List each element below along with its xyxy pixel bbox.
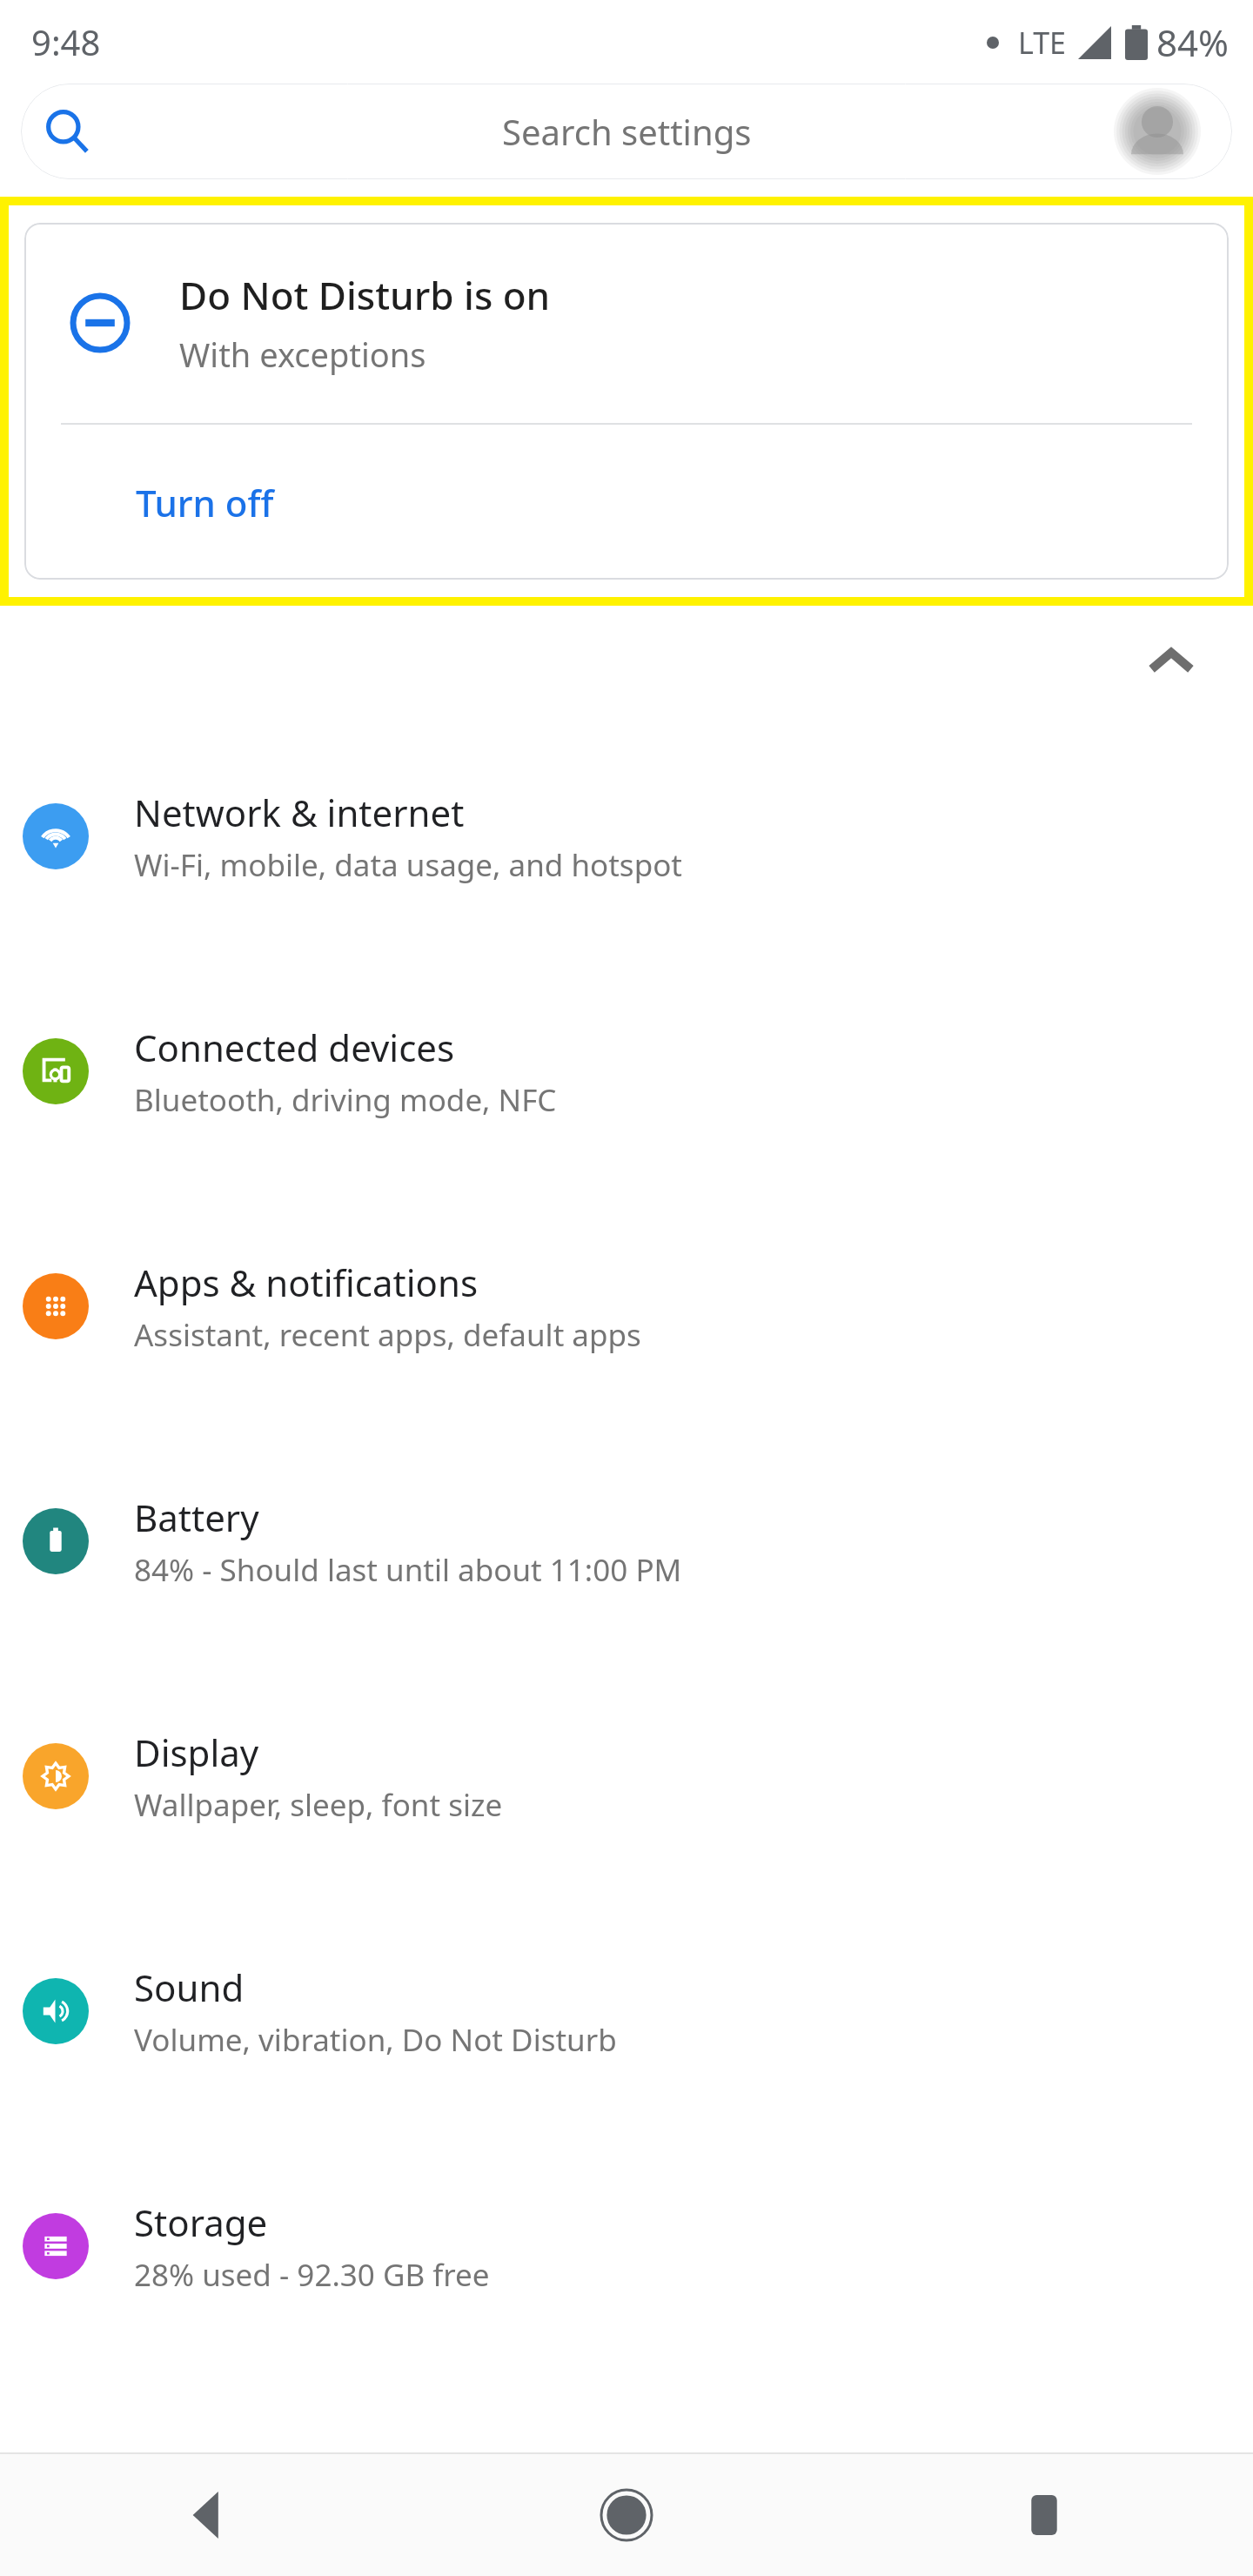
button[interactable]: Collapse — [1147, 638, 1196, 687]
staticText: Turn off — [136, 478, 274, 527]
button[interactable]: Battery — [0, 1424, 1253, 1659]
button[interactable]: Apps & notifications — [0, 1189, 1253, 1424]
staticText: Display — [134, 1727, 259, 1777]
staticText: Assistant, recent apps, default apps — [134, 1314, 641, 1356]
staticText: Search settings — [502, 108, 752, 155]
staticText: Wi-Fi, mobile, data usage, and hotspot — [134, 844, 682, 886]
staticText: With exceptions — [179, 332, 426, 377]
button[interactable]: Search — [21, 84, 1232, 179]
staticText: Connected devices — [134, 1023, 455, 1072]
staticText: Apps & notifications — [134, 1258, 479, 1307]
other: Search — [45, 109, 90, 154]
button[interactable]: Home — [418, 2454, 835, 2576]
button[interactable]: Turn off — [24, 425, 1229, 580]
staticText: LTE — [1018, 23, 1066, 63]
staticText: 84% - Should last until about 11:00 PM — [134, 1549, 682, 1591]
staticText: 28% used - 92.30 GB free — [134, 2254, 490, 2296]
staticText: 84% — [1156, 17, 1229, 67]
button[interactable]: Storage — [0, 2129, 1253, 2364]
other: Account — [1114, 88, 1201, 175]
button[interactable]: Connected devices — [0, 954, 1253, 1189]
staticText: Storage — [134, 2197, 268, 2247]
button[interactable]: Sound — [0, 1894, 1253, 2129]
staticText: Network & internet — [134, 788, 465, 837]
button[interactable]: Display — [0, 1659, 1253, 1894]
staticText: Battery — [134, 1493, 259, 1542]
button[interactable]: Do Not Disturb is on — [24, 223, 1229, 580]
staticText: Sound — [134, 1962, 245, 2012]
staticText: Wallpaper, sleep, font size — [134, 1784, 503, 1826]
staticText: Volume, vibration, Do Not Disturb — [134, 2019, 617, 2061]
staticText: 9:48 — [31, 18, 101, 65]
staticText: Bluetooth, driving mode, NFC — [134, 1079, 557, 1121]
button[interactable]: Network & internet — [0, 719, 1253, 954]
staticText: Do Not Disturb is on — [179, 269, 551, 321]
button[interactable]: Back — [0, 2454, 418, 2576]
button[interactable]: Recent apps — [835, 2454, 1253, 2576]
